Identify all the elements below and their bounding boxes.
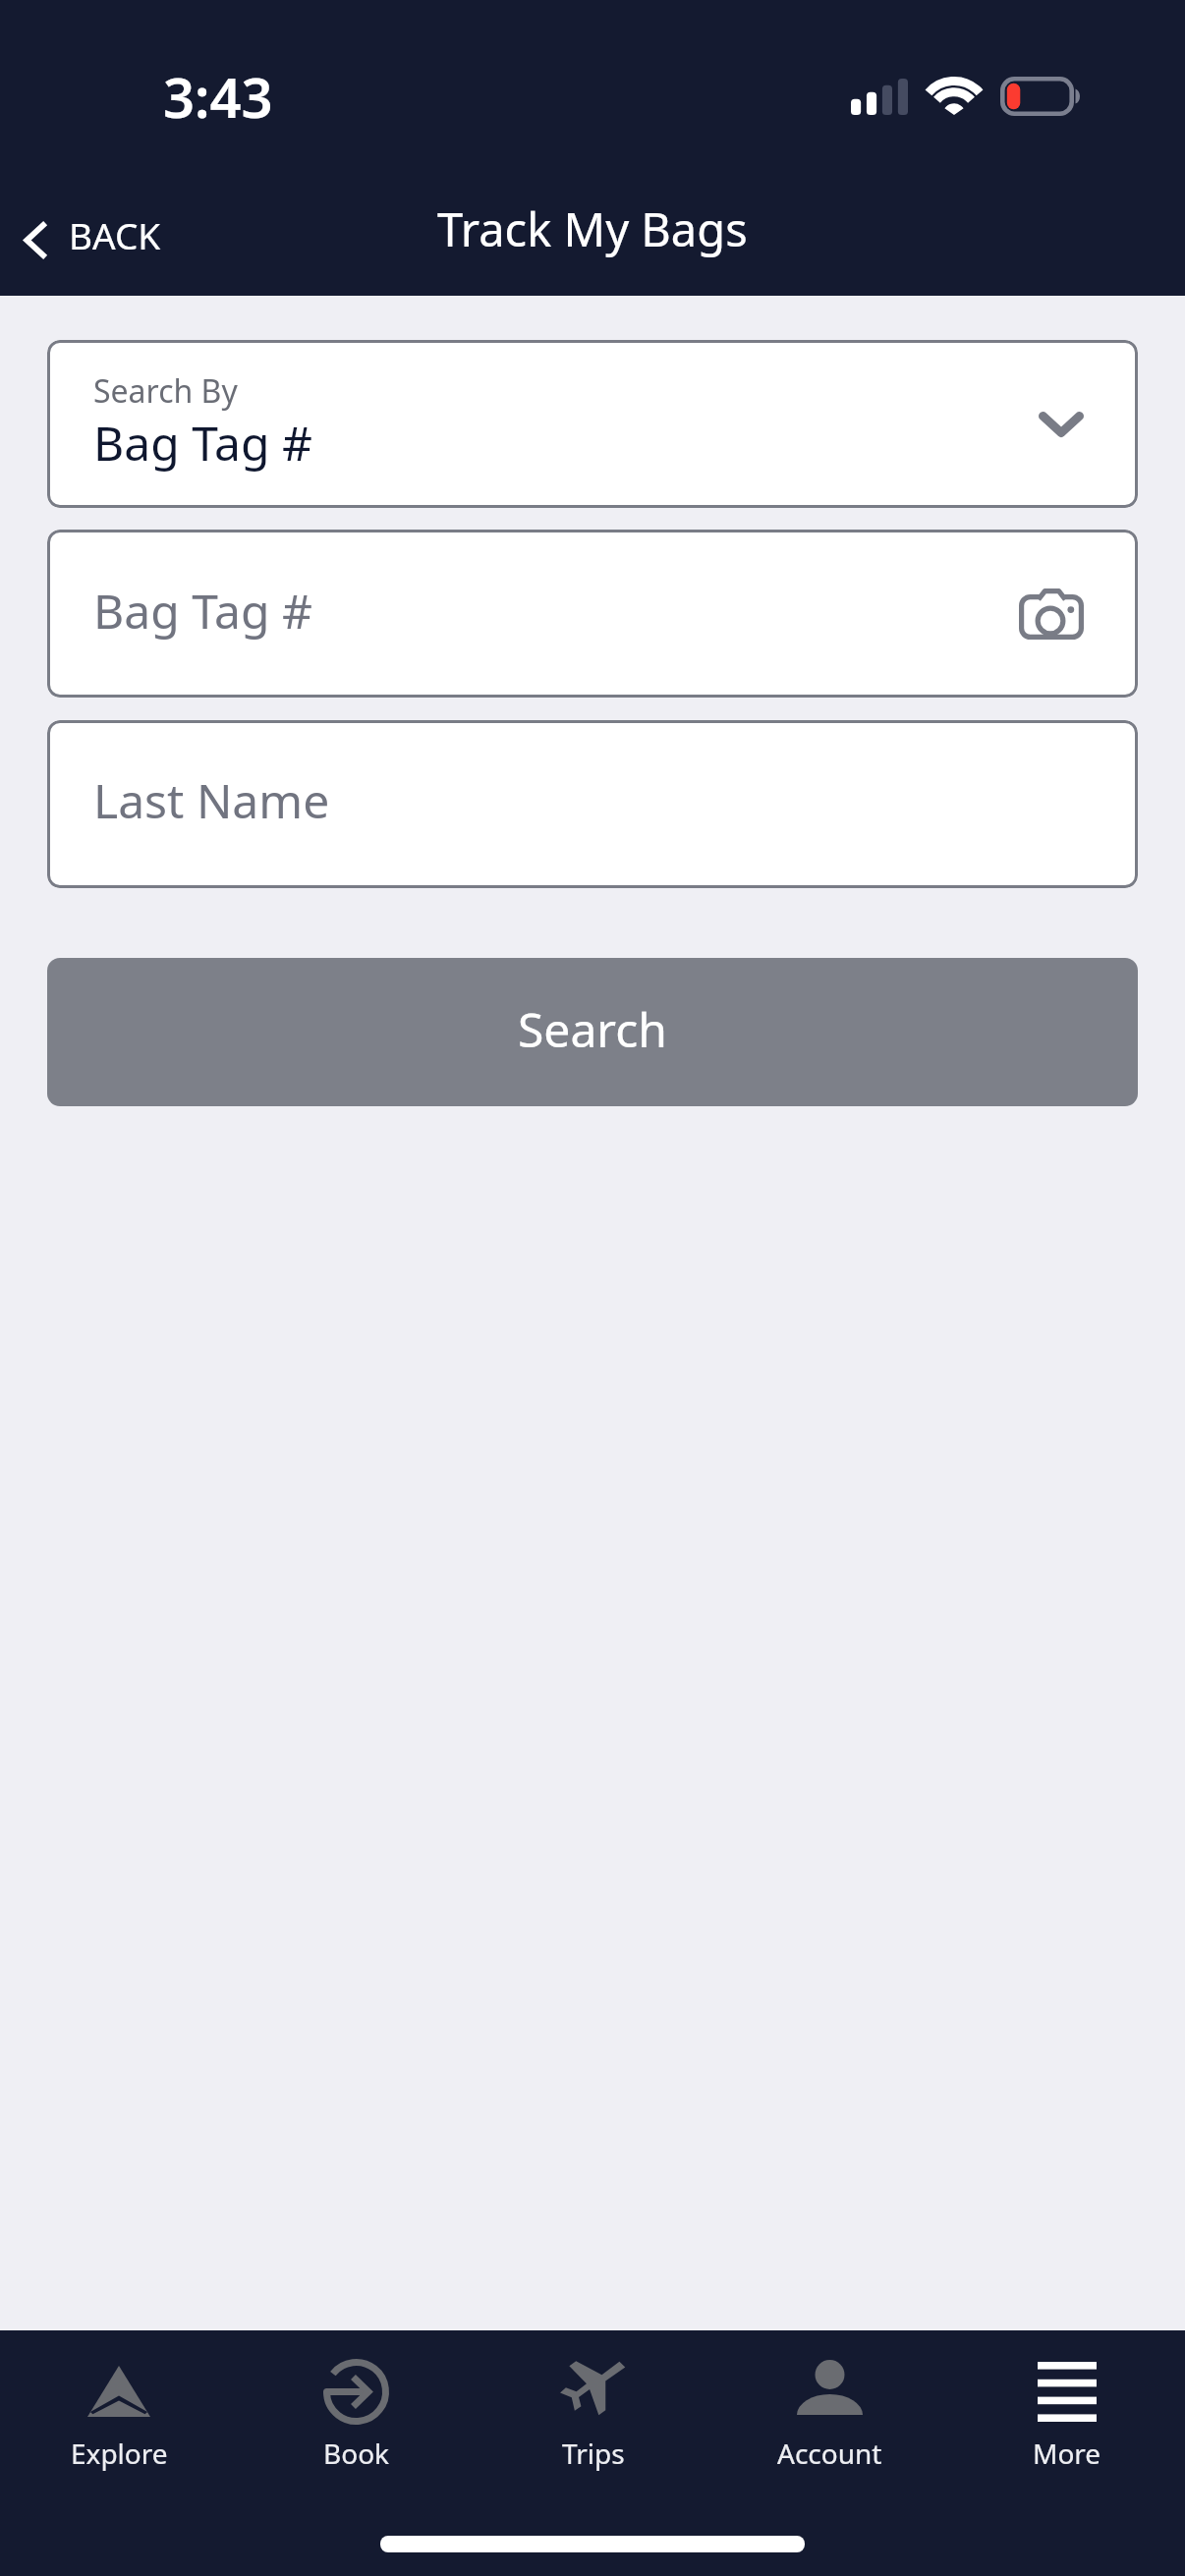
other: Open search by selector: [1039, 412, 1084, 437]
button[interactable]: More: [948, 2330, 1185, 2492]
button[interactable]: Bag Tag #: [47, 530, 1138, 698]
button[interactable]: Last Name: [47, 720, 1138, 888]
button[interactable]: Account: [711, 2330, 948, 2492]
staticText: Last Name: [93, 768, 330, 832]
staticText: Trips: [562, 2435, 625, 2472]
staticText: BACK: [69, 210, 161, 259]
staticText: Book: [323, 2435, 390, 2472]
button[interactable]: Scan bag tag with camera: [1019, 588, 1084, 640]
button[interactable]: Search: [47, 958, 1138, 1106]
button[interactable]: Trips: [475, 2330, 711, 2492]
staticText: Track My Bags: [437, 197, 748, 260]
button[interactable]: Back: [0, 186, 185, 294]
staticText: Search By: [93, 369, 238, 413]
button[interactable]: Explore: [0, 2330, 238, 2492]
button[interactable]: Book: [238, 2330, 475, 2492]
staticText: More: [1033, 2435, 1101, 2472]
staticText: 3:43: [163, 59, 273, 134]
staticText: Search: [518, 997, 667, 1061]
staticText: Account: [777, 2435, 882, 2472]
staticText: Explore: [71, 2435, 168, 2472]
staticText: Bag Tag #: [93, 411, 312, 475]
staticText: Bag Tag #: [93, 579, 312, 643]
button[interactable]: Search By: [47, 340, 1138, 508]
